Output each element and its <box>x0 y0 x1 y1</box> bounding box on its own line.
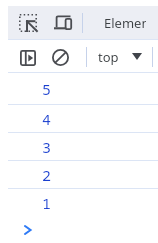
staticText: top <box>98 48 119 66</box>
button[interactable]: Show console sidebar <box>12 42 44 74</box>
staticText: 3 <box>42 137 52 157</box>
staticText: 5 <box>42 79 52 99</box>
staticText: Elements <box>104 14 146 32</box>
staticText: 1 <box>42 193 52 213</box>
button[interactable]: Toggle device toolbar <box>47 6 79 38</box>
button[interactable]: Clear console <box>44 41 76 73</box>
staticText: 4 <box>42 109 52 129</box>
button[interactable]: Inspect element <box>12 7 44 39</box>
button[interactable]: top <box>87 40 152 73</box>
button[interactable]: Elements <box>83 6 158 40</box>
staticText: 2 <box>42 165 52 185</box>
